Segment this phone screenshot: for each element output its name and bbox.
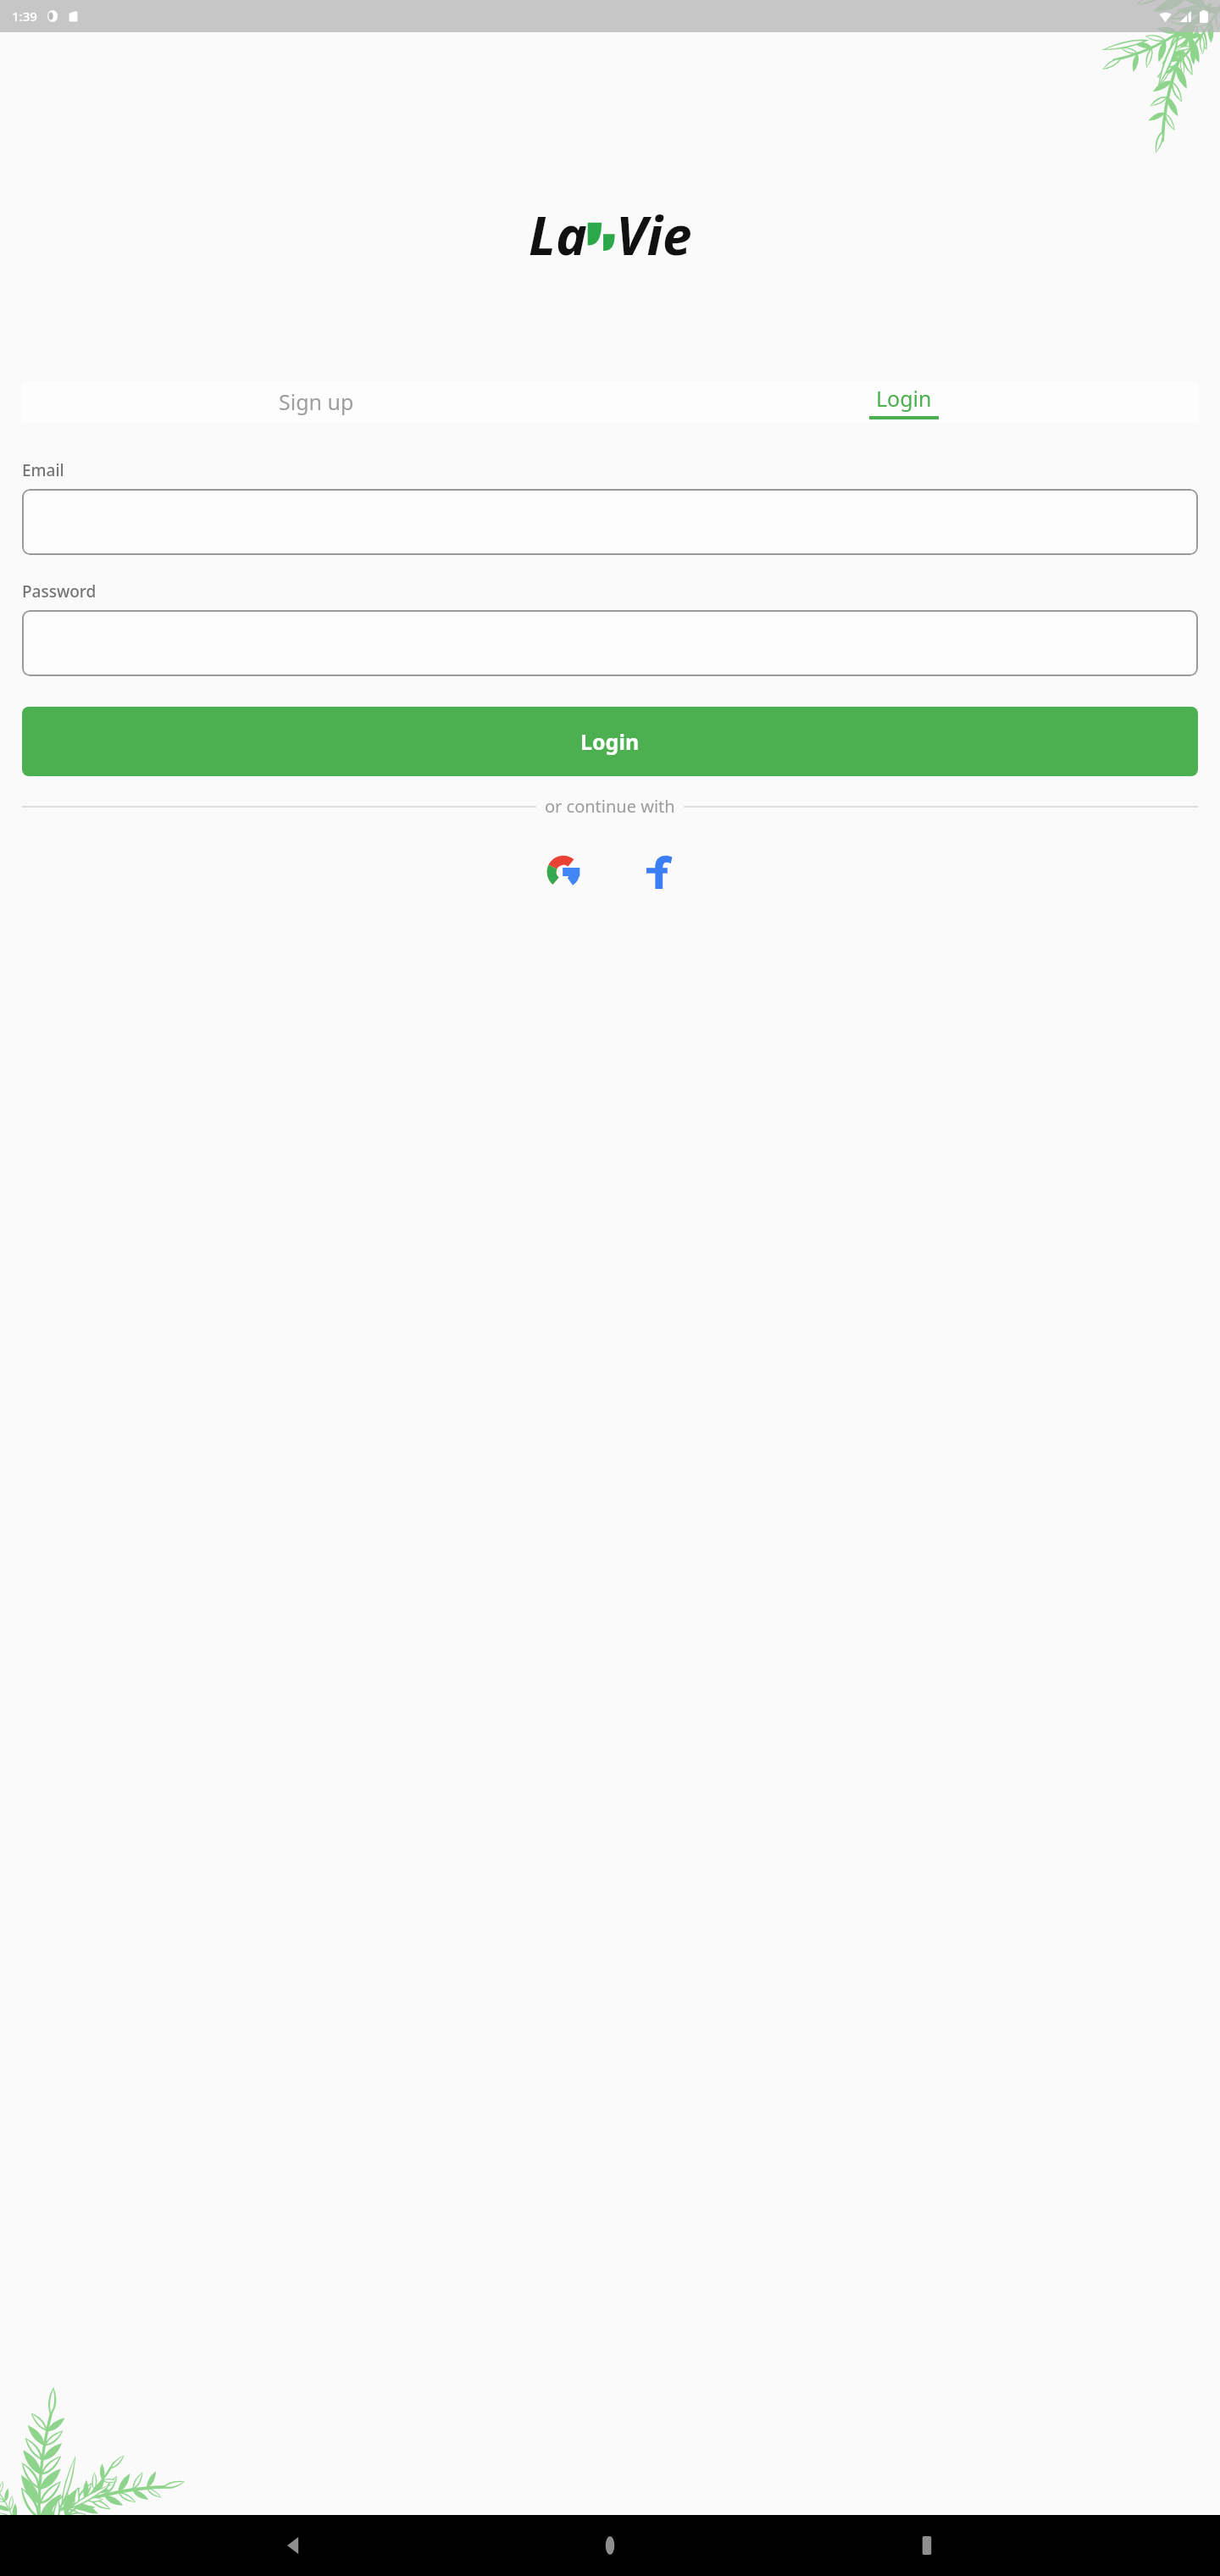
button[interactable]: Recent apps (903, 2522, 951, 2569)
staticText: Login (580, 727, 640, 756)
staticText: Vie (616, 199, 692, 270)
staticText: Password (22, 580, 97, 602)
staticText: Email (22, 459, 64, 481)
staticText: or continue with (545, 795, 675, 818)
staticText: La (529, 199, 587, 270)
button[interactable]: Login (22, 707, 1198, 776)
staticText: Login (876, 384, 932, 413)
button[interactable]: Continue with Google (540, 848, 587, 896)
button[interactable]: Home (586, 2522, 634, 2569)
button[interactable]: Login (610, 381, 1198, 422)
staticText: 1:39 (12, 8, 37, 25)
button[interactable]: Continue with Facebook (633, 848, 680, 896)
button[interactable]: Back (269, 2522, 317, 2569)
button[interactable]: Sign up (22, 381, 610, 422)
button[interactable] (22, 610, 1198, 676)
staticText: Sign up (279, 387, 354, 416)
button[interactable] (22, 489, 1198, 555)
